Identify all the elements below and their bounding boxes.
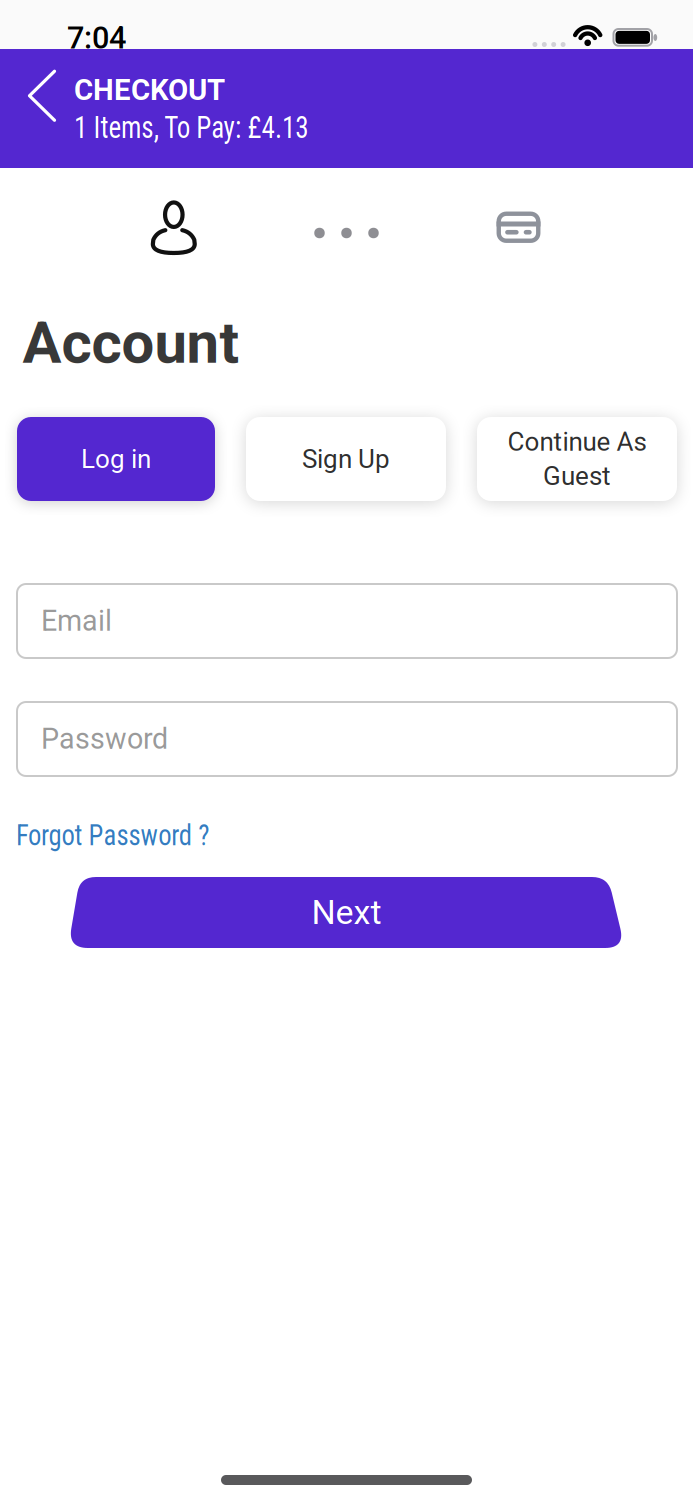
staticText: 7:04 <box>67 20 126 56</box>
staticText: Password <box>41 722 168 756</box>
staticText: CHECKOUT <box>74 73 225 107</box>
button[interactable]: Log in <box>17 417 215 501</box>
staticText: Guest <box>543 461 611 491</box>
button[interactable]: Continue As <box>477 417 677 501</box>
button[interactable]: Sign Up <box>246 417 446 501</box>
staticText: Email <box>41 604 112 638</box>
staticText: Sign Up <box>302 444 390 474</box>
button[interactable]: Next <box>68 877 625 948</box>
button[interactable]: Back <box>11 46 73 146</box>
staticText: Continue As <box>507 426 646 457</box>
button[interactable]: Forgot Password ? <box>16 819 224 852</box>
staticText: Forgot Password ? <box>16 819 224 852</box>
staticText: Account <box>22 309 239 377</box>
staticText: 1 Items, To Pay: £4.13 <box>74 109 339 145</box>
staticText: Next <box>311 893 381 932</box>
staticText: Log in <box>81 444 151 474</box>
